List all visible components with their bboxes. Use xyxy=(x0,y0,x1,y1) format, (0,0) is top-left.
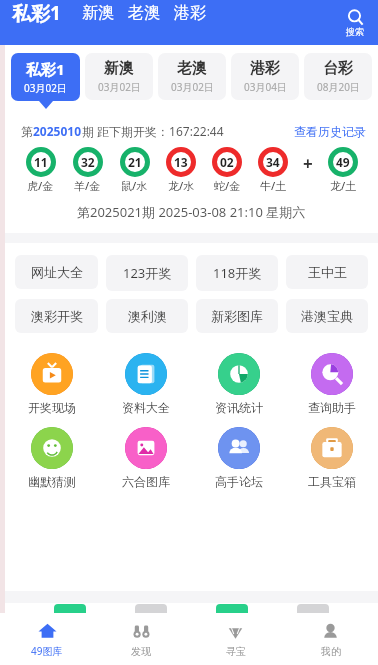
staticText: 03月02日 xyxy=(24,81,67,95)
staticText: 港彩 xyxy=(250,59,280,78)
button[interactable]: 查询助手 xyxy=(285,351,378,417)
staticText: 发现 xyxy=(131,645,151,658)
staticText: 资讯统计 xyxy=(215,400,263,415)
staticText: 期 距下期开奖：167:22:44 xyxy=(82,123,224,139)
staticText: 03月02日 xyxy=(98,80,141,94)
button[interactable]: 老澳 xyxy=(121,3,167,23)
staticText: 49 xyxy=(336,154,350,170)
staticText: 11 xyxy=(34,154,48,170)
button[interactable]: 港彩 xyxy=(231,53,299,100)
button[interactable] xyxy=(216,604,248,613)
staticText: 03月04日 xyxy=(244,80,287,94)
button[interactable]: 49 xyxy=(320,147,366,193)
staticText: 龙/水 xyxy=(168,178,195,193)
staticText: 鼠/水 xyxy=(121,178,148,193)
button[interactable]: 发现 xyxy=(94,617,188,662)
button[interactable]: 21 xyxy=(111,147,158,193)
button[interactable]: 新澳 xyxy=(75,3,121,23)
button[interactable]: 老澳 xyxy=(158,53,226,100)
button[interactable]: 六合图库 xyxy=(99,425,192,491)
staticText: 03月02日 xyxy=(171,80,214,94)
button[interactable] xyxy=(54,604,86,613)
button[interactable]: 开奖现场 xyxy=(5,351,99,417)
staticText: 32 xyxy=(81,154,95,170)
staticText: 49图库 xyxy=(31,644,63,658)
staticText: 开奖现场 xyxy=(28,400,76,415)
staticText: 私彩1 xyxy=(26,59,65,79)
button[interactable]: 新彩图库 xyxy=(196,299,278,333)
staticText: 新彩图库 xyxy=(211,308,263,324)
button[interactable]: 港彩 xyxy=(167,3,213,23)
button[interactable]: 11 xyxy=(17,147,64,193)
button[interactable]: 搜索 xyxy=(342,7,368,39)
staticText: 13 xyxy=(174,154,188,170)
staticText: 我的 xyxy=(321,645,341,658)
button[interactable]: 私彩1 xyxy=(12,0,61,26)
button[interactable]: 123开奖 xyxy=(106,255,188,291)
staticText: 08月20日 xyxy=(317,80,360,94)
button[interactable]: 118开奖 xyxy=(196,255,278,291)
button[interactable]: 工具宝箱 xyxy=(285,425,378,491)
staticText: 新澳 xyxy=(104,59,134,78)
button[interactable]: 网址大全 xyxy=(15,255,98,289)
staticText: 21 xyxy=(128,154,142,170)
staticText: 工具宝箱 xyxy=(308,474,356,489)
button[interactable]: 王中王 xyxy=(286,255,368,289)
staticText: 第 xyxy=(21,124,33,139)
button[interactable]: 13 xyxy=(158,147,204,193)
staticText: 高手论坛 xyxy=(215,474,263,489)
staticText: 123开奖 xyxy=(123,264,172,282)
staticText: 港彩 xyxy=(174,3,206,23)
staticText: + xyxy=(303,152,313,175)
staticText: 台彩 xyxy=(323,59,353,78)
button[interactable]: 查看历史记录 xyxy=(294,124,366,139)
button[interactable]: 资讯统计 xyxy=(192,351,285,417)
staticText: 澳利澳 xyxy=(128,308,167,324)
button[interactable] xyxy=(297,604,329,613)
staticText: 搜索 xyxy=(346,26,364,37)
staticText: 02 xyxy=(220,154,234,170)
staticText: 蛇/金 xyxy=(214,178,241,193)
staticText: 牛/土 xyxy=(260,178,287,193)
button[interactable]: 寻宝 xyxy=(188,617,283,662)
staticText: 查看历史记录 xyxy=(294,124,366,139)
staticText: 幽默猜测 xyxy=(28,474,76,489)
staticText: 118开奖 xyxy=(213,264,262,282)
button[interactable]: 资料大全 xyxy=(99,351,192,417)
button[interactable]: 澳彩开奖 xyxy=(15,299,98,333)
staticText: 新澳 xyxy=(82,3,114,23)
button[interactable]: 32 xyxy=(64,147,111,193)
button[interactable]: 新澳 xyxy=(85,53,153,100)
staticText: 34 xyxy=(266,154,280,170)
staticText: 羊/金 xyxy=(74,178,101,193)
button[interactable] xyxy=(135,604,167,613)
staticText: 网址大全 xyxy=(31,264,83,280)
button[interactable]: 34 xyxy=(250,147,296,193)
button[interactable]: 港澳宝典 xyxy=(286,299,368,333)
staticText: 虎/金 xyxy=(27,178,54,193)
staticText: 寻宝 xyxy=(226,645,246,658)
staticText: 资料大全 xyxy=(122,400,170,415)
staticText: 港澳宝典 xyxy=(301,308,353,324)
button[interactable]: 台彩 xyxy=(304,53,372,100)
button[interactable]: 我的 xyxy=(283,617,378,662)
staticText: 老澳 xyxy=(177,59,207,78)
button[interactable]: 私彩1 xyxy=(11,53,80,101)
staticText: 老澳 xyxy=(128,3,160,23)
button[interactable]: 02 xyxy=(204,147,250,193)
staticText: 查询助手 xyxy=(308,400,356,415)
staticText: 澳彩开奖 xyxy=(31,308,83,324)
staticText: 王中王 xyxy=(308,264,347,280)
button[interactable]: 高手论坛 xyxy=(192,425,285,491)
button[interactable]: 49图库 xyxy=(0,616,94,662)
button[interactable]: 幽默猜测 xyxy=(5,425,99,491)
staticText: 2025010 xyxy=(33,123,82,139)
staticText: 六合图库 xyxy=(122,474,170,489)
staticText: 第2025021期 2025-03-08 21:10 星期六 xyxy=(77,203,306,221)
staticText: 龙/土 xyxy=(330,178,357,193)
button[interactable]: 澳利澳 xyxy=(106,299,188,333)
